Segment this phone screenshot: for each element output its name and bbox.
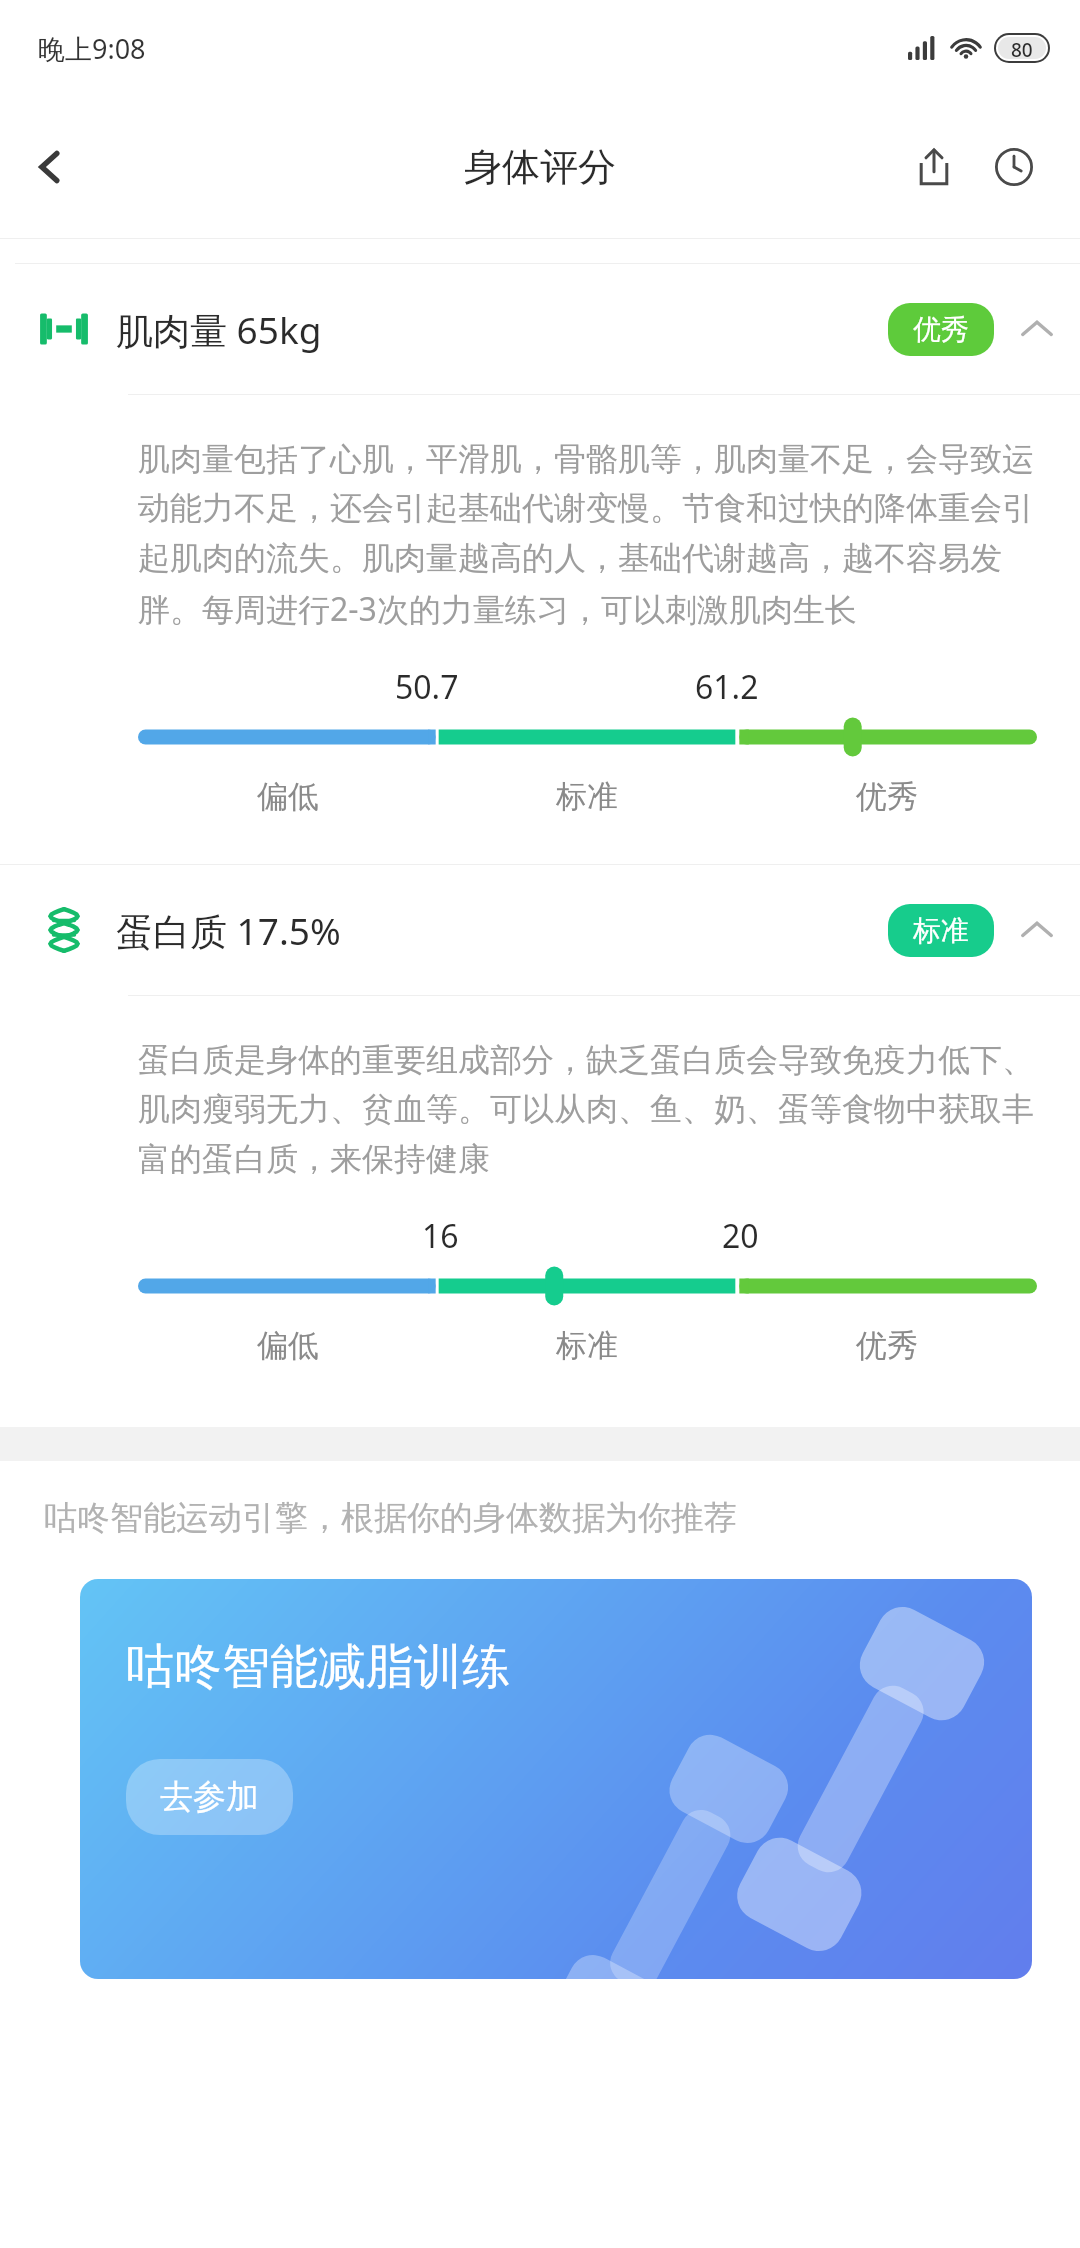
staticText: 晚上9:08 (38, 30, 146, 67)
staticText: 61.2 (695, 665, 759, 707)
button[interactable]: 去参加 (126, 1759, 293, 1835)
staticText: 20 (722, 1214, 759, 1256)
button[interactable]: 蛋白质 17.5% (0, 865, 1080, 995)
staticText: 肌肉量包括了心肌，平滑肌，骨骼肌等，肌肉量不足，会导致运动能力不足，还会引起基础… (138, 439, 1036, 631)
staticText: 16 (422, 1214, 459, 1256)
button[interactable]: Share (894, 127, 974, 207)
staticText: 咕咚智能运动引擎，根据你的身体数据为你推荐 (44, 1497, 737, 1539)
staticText: 标准 (913, 913, 969, 948)
button[interactable]: 肌肉量 65kg (0, 264, 1080, 394)
button[interactable]: Back (0, 117, 100, 217)
staticText: 80 (1011, 37, 1033, 59)
staticText: 肌肉量 65kg (116, 304, 322, 355)
staticText: 偏低 (257, 777, 319, 816)
staticText: 标准 (556, 777, 618, 816)
staticText: 优秀 (913, 312, 969, 347)
staticText: 蛋白质 17.5% (116, 905, 341, 956)
staticText: 优秀 (856, 777, 918, 816)
staticText: 50.7 (395, 665, 459, 707)
button[interactable]: 咕咚智能减脂训练 (80, 1579, 1032, 1979)
staticText: 咕咚智能减脂训练 (126, 1637, 510, 1697)
staticText: 偏低 (257, 1326, 319, 1365)
staticText: 蛋白质是身体的重要组成部分，缺乏蛋白质会导致免疫力低下、肌肉瘦弱无力、贫血等。可… (138, 1040, 1036, 1180)
staticText: 去参加 (160, 1776, 259, 1818)
staticText: 标准 (556, 1326, 618, 1365)
button[interactable]: History (974, 127, 1054, 207)
staticText: 身体评分 (464, 143, 616, 191)
staticText: 优秀 (856, 1326, 918, 1365)
